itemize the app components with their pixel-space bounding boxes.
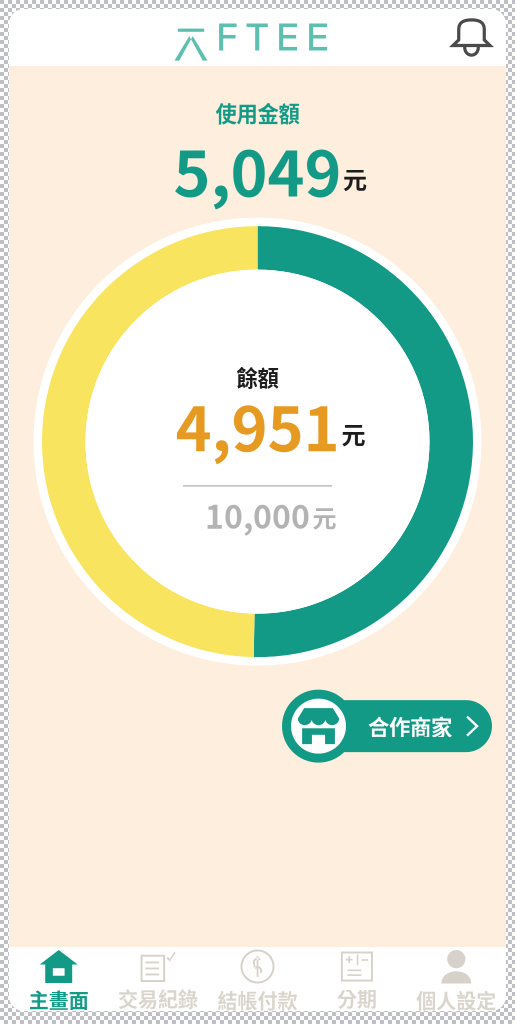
staticText: 餘額	[236, 361, 278, 392]
staticText: FTEE	[216, 14, 328, 60]
staticText: 使用金額	[215, 97, 299, 128]
staticText: 合作商家	[368, 711, 452, 742]
button[interactable]: 交易紀錄	[108, 945, 208, 1013]
staticText: 元	[341, 416, 365, 451]
staticText: 個人設定	[416, 985, 496, 1014]
button[interactable]: Notifications	[453, 17, 506, 57]
staticText: 元	[343, 161, 367, 196]
staticText: 分期	[337, 983, 377, 1012]
button[interactable]: 結帳付款	[208, 943, 307, 1014]
staticText: 5,049	[173, 124, 341, 215]
staticText: 主畫面	[29, 985, 89, 1014]
button[interactable]: 主畫面	[9, 944, 108, 1014]
staticText: 元	[312, 499, 336, 534]
button[interactable]: 分期	[307, 945, 407, 1012]
staticText: 4,951	[175, 380, 339, 469]
staticText: 交易紀錄	[118, 984, 198, 1013]
button[interactable]: 個人設定	[407, 943, 506, 1014]
staticText: 10,000	[205, 492, 310, 538]
button[interactable]: 合作商家	[286, 690, 496, 763]
staticText: 結帳付款	[217, 985, 297, 1014]
